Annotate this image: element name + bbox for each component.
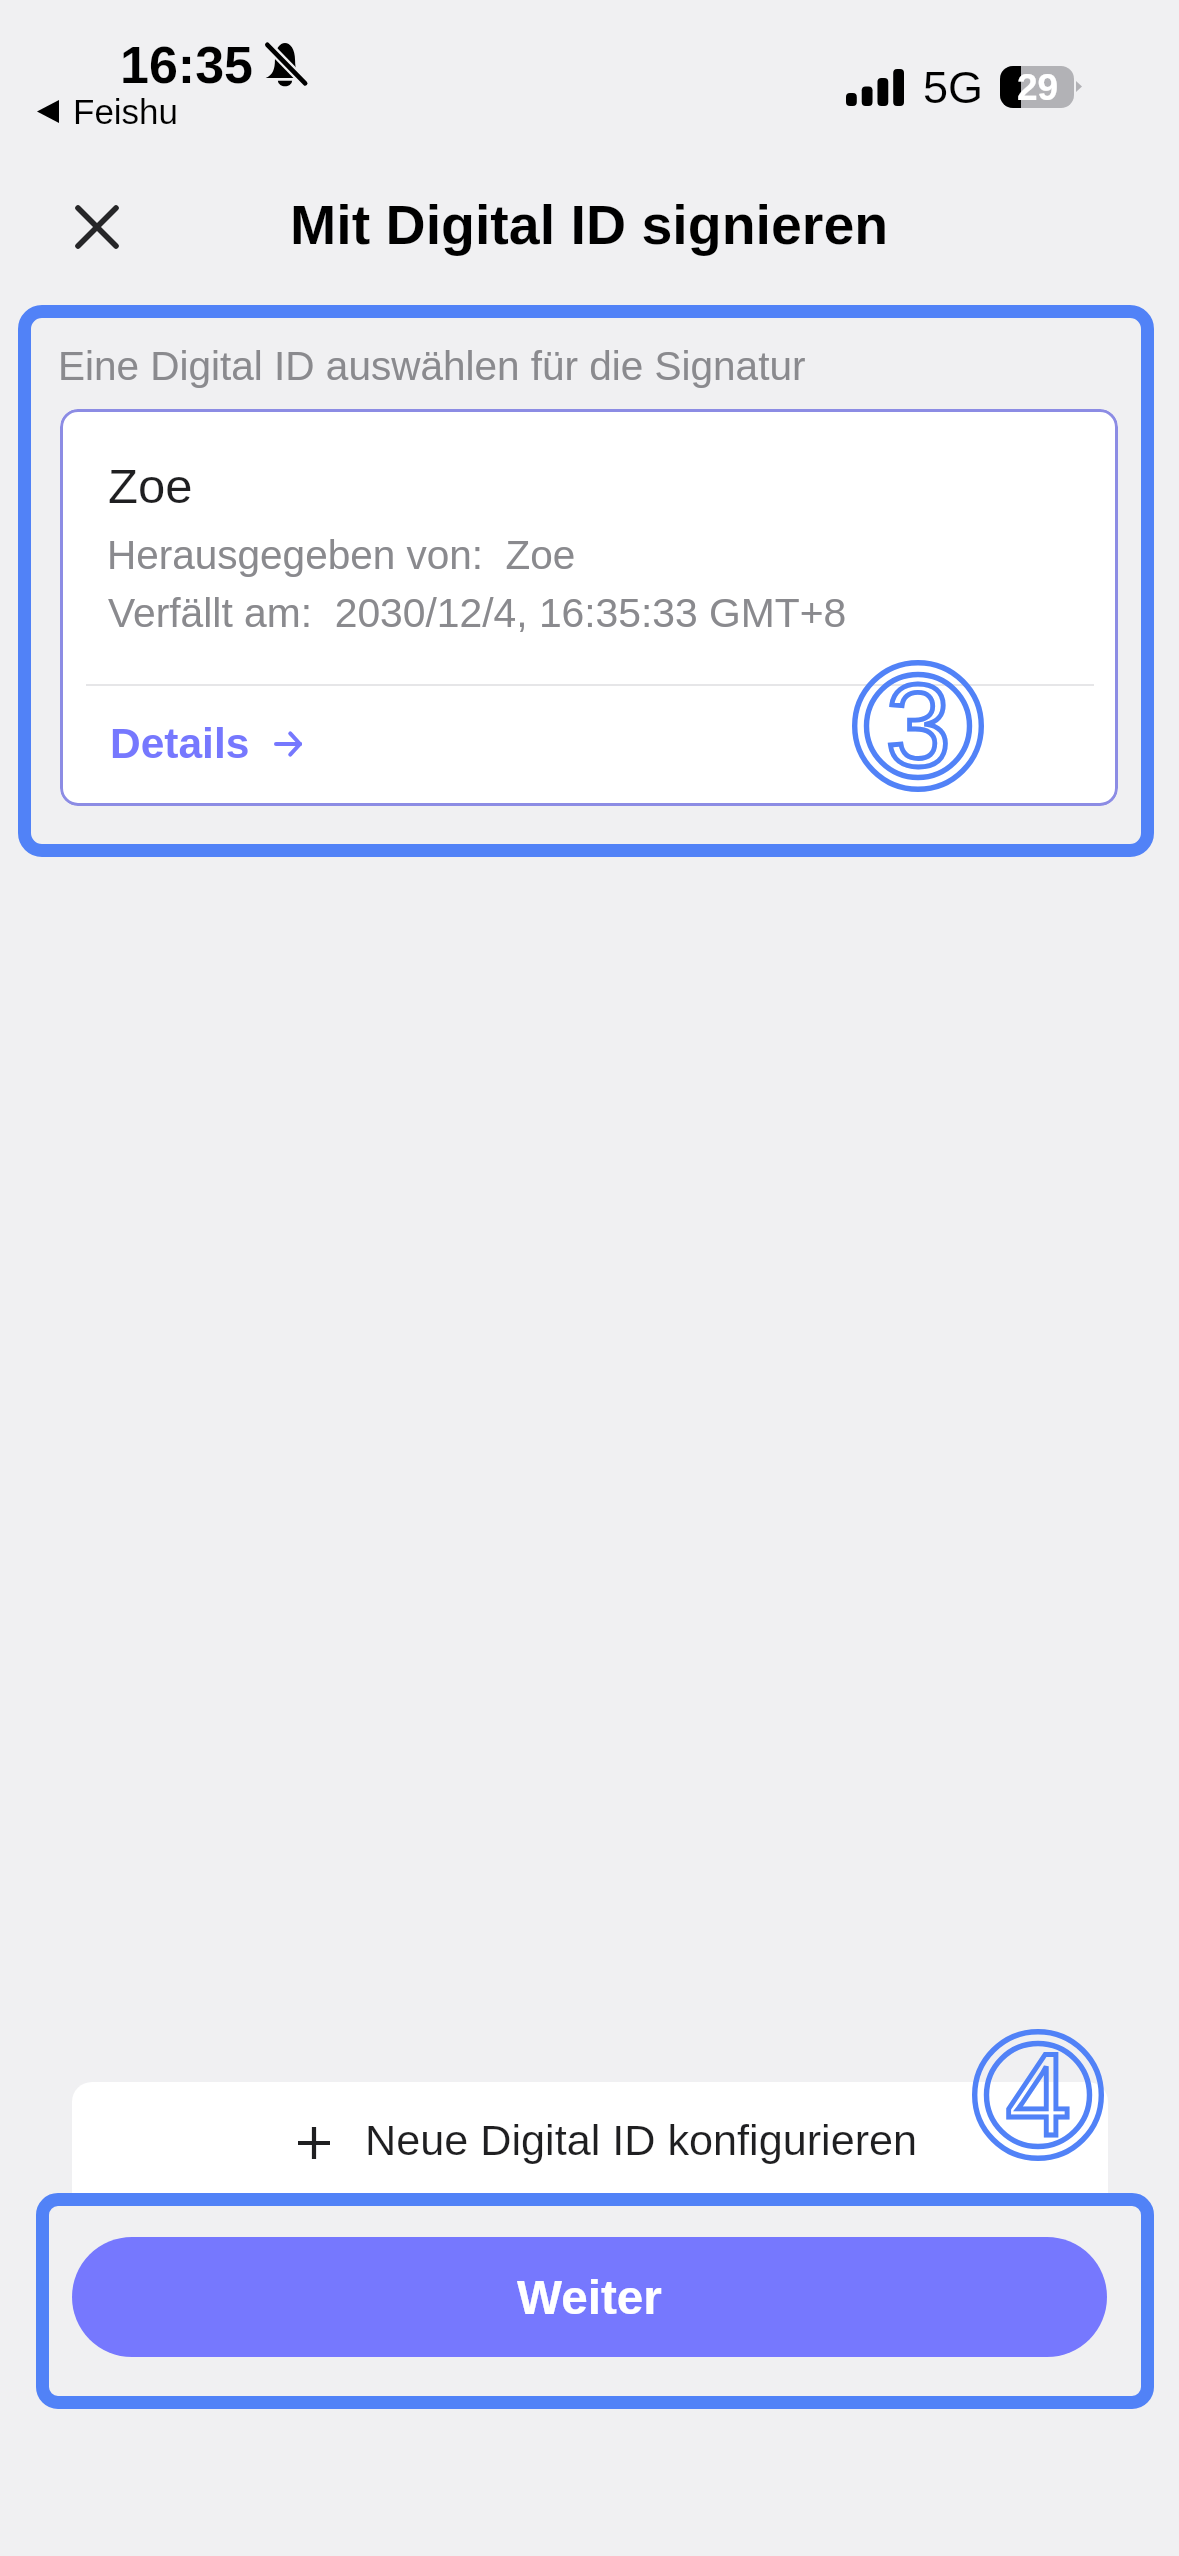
button[interactable]: Zoe — [60, 409, 1118, 806]
staticText: Details — [110, 720, 250, 767]
button[interactable]: Feishu — [37, 92, 179, 131]
staticText: Verfällt am: 2030/12/4, 16:35:33 GMT+8 — [108, 590, 847, 636]
staticText: Feishu — [73, 92, 179, 131]
staticText: Herausgegeben von: Zoe — [107, 532, 576, 577]
staticText: 4 — [1006, 2030, 1071, 2160]
button[interactable]: Neue Digital ID konfigurieren — [72, 2082, 1108, 2193]
staticText: 29 — [1017, 67, 1059, 108]
button[interactable]: Weiter — [72, 2237, 1107, 2357]
staticText: Mit Digital ID signieren — [290, 194, 889, 256]
staticText: 16:35 — [120, 36, 253, 94]
staticText: 5G — [923, 62, 984, 112]
staticText: Eine Digital ID auswählen für die Signat… — [58, 343, 806, 388]
staticText: Neue Digital ID konfigurieren — [365, 2116, 918, 2164]
staticText: Zoe — [108, 459, 193, 514]
button[interactable]: Details — [110, 720, 302, 767]
staticText: 3 — [886, 661, 951, 791]
staticText: Weiter — [517, 2271, 662, 2324]
button[interactable]: Close — [52, 182, 142, 272]
